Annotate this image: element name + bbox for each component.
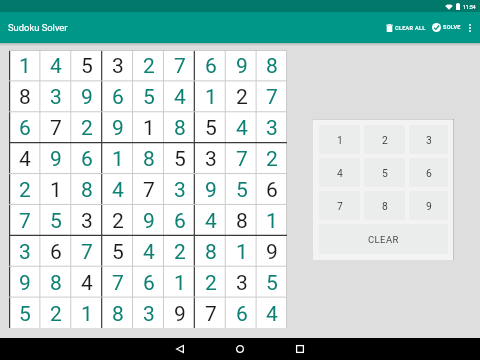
button[interactable]: 2 — [226, 81, 257, 112]
button[interactable]: 3 — [9, 236, 40, 267]
button[interactable]: 2 — [257, 143, 287, 174]
button[interactable]: 2 — [164, 236, 195, 267]
button[interactable]: 6 — [257, 174, 287, 205]
button[interactable]: 9 — [102, 112, 133, 143]
button[interactable]: 4 — [226, 112, 257, 143]
button[interactable]: 1 — [71, 298, 102, 328]
button[interactable]: 5 — [226, 174, 257, 205]
button[interactable]: 8 — [71, 174, 102, 205]
button[interactable]: 8 — [102, 298, 133, 328]
button[interactable]: 2 — [364, 125, 405, 154]
button[interactable]: 5 — [102, 236, 133, 267]
button[interactable]: 3 — [409, 125, 448, 154]
button[interactable]: 7 — [195, 298, 226, 328]
button[interactable]: 5 — [364, 158, 405, 187]
button[interactable]: 9 — [257, 236, 287, 267]
button[interactable]: 4 — [9, 143, 40, 174]
button[interactable]: 2 — [102, 205, 133, 236]
button[interactable]: 7 — [102, 267, 133, 298]
staticText: 3 — [205, 147, 217, 172]
button[interactable]: 5 — [195, 112, 226, 143]
button[interactable]: 8 — [226, 205, 257, 236]
button[interactable]: 4 — [164, 81, 195, 112]
button[interactable]: 3 — [257, 112, 287, 143]
button[interactable]: 6 — [133, 267, 164, 298]
button[interactable]: 8 — [164, 112, 195, 143]
button[interactable]: 8 — [195, 236, 226, 267]
button[interactable]: 6 — [102, 81, 133, 112]
button[interactable]: 1 — [195, 81, 226, 112]
button[interactable]: 3 — [102, 50, 133, 81]
button[interactable]: 3 — [195, 143, 226, 174]
button[interactable]: 5 — [9, 298, 40, 328]
button[interactable]: 4 — [133, 236, 164, 267]
button[interactable]: 3 — [164, 174, 195, 205]
button[interactable]: 1 — [40, 174, 71, 205]
button[interactable]: 7 — [226, 143, 257, 174]
button[interactable]: 9 — [409, 191, 448, 220]
button[interactable]: 4 — [71, 267, 102, 298]
button[interactable]: CLEAR — [319, 224, 448, 254]
button[interactable]: 1 — [319, 125, 360, 154]
button[interactable]: 8 — [364, 191, 405, 220]
button[interactable]: More options — [462, 15, 477, 41]
button[interactable]: 8 — [9, 81, 40, 112]
button[interactable]: 3 — [40, 81, 71, 112]
button[interactable]: 9 — [40, 143, 71, 174]
button[interactable]: 2 — [195, 267, 226, 298]
button[interactable]: 9 — [9, 267, 40, 298]
button[interactable]: 5 — [71, 50, 102, 81]
button[interactable]: 1 — [102, 143, 133, 174]
button[interactable]: 7 — [9, 205, 40, 236]
button[interactable]: 4 — [102, 174, 133, 205]
button[interactable]: 9 — [71, 81, 102, 112]
button[interactable]: 3 — [133, 298, 164, 328]
button[interactable]: 6 — [164, 205, 195, 236]
button[interactable]: 9 — [133, 205, 164, 236]
button[interactable]: 3 — [226, 267, 257, 298]
button[interactable]: 5 — [133, 81, 164, 112]
button[interactable]: 1 — [226, 236, 257, 267]
staticText: 7 — [143, 178, 155, 203]
button[interactable]: 2 — [40, 298, 71, 328]
button[interactable]: 7 — [319, 191, 360, 220]
button[interactable]: 1 — [9, 50, 40, 81]
button[interactable]: 4 — [40, 50, 71, 81]
button[interactable]: 9 — [164, 298, 195, 328]
button[interactable]: 8 — [40, 267, 71, 298]
button[interactable]: 5 — [164, 143, 195, 174]
button[interactable]: 5 — [257, 267, 287, 298]
button[interactable]: 7 — [164, 50, 195, 81]
button[interactable]: 7 — [257, 81, 287, 112]
button[interactable]: 6 — [9, 112, 40, 143]
button[interactable]: 6 — [195, 50, 226, 81]
button[interactable]: 2 — [71, 112, 102, 143]
button[interactable]: CLEAR ALL — [381, 17, 430, 39]
button[interactable]: 5 — [40, 205, 71, 236]
button[interactable]: 4 — [319, 158, 360, 187]
button[interactable]: 1 — [133, 112, 164, 143]
button[interactable]: 9 — [195, 174, 226, 205]
button[interactable]: Back — [166, 338, 194, 360]
button[interactable]: 8 — [133, 143, 164, 174]
button[interactable]: 1 — [164, 267, 195, 298]
button[interactable]: 9 — [226, 50, 257, 81]
button[interactable]: 6 — [40, 236, 71, 267]
button[interactable]: 4 — [257, 298, 287, 328]
button[interactable]: 6 — [71, 143, 102, 174]
staticText: 6 — [174, 209, 186, 234]
button[interactable]: SOLVE — [428, 16, 465, 39]
button[interactable]: 7 — [71, 236, 102, 267]
button[interactable]: Home — [226, 338, 254, 360]
button[interactable]: 6 — [226, 298, 257, 328]
button[interactable]: 1 — [257, 205, 287, 236]
button[interactable]: 6 — [409, 158, 448, 187]
button[interactable]: 7 — [133, 174, 164, 205]
button[interactable]: 8 — [257, 50, 287, 81]
button[interactable]: 2 — [9, 174, 40, 205]
button[interactable]: 2 — [133, 50, 164, 81]
button[interactable]: 4 — [195, 205, 226, 236]
button[interactable]: 3 — [71, 205, 102, 236]
button[interactable]: 7 — [40, 112, 71, 143]
button[interactable]: Recent apps — [286, 338, 314, 360]
